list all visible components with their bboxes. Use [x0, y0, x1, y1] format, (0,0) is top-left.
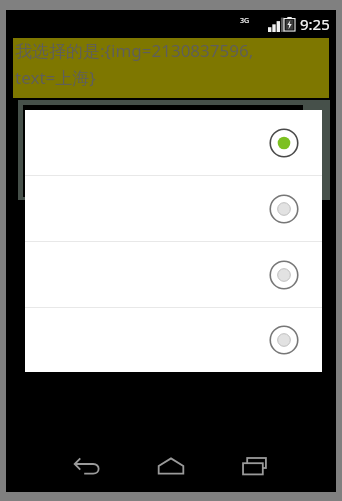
- staticText: 9:25: [300, 14, 330, 34]
- button[interactable]: [25, 110, 322, 175]
- button[interactable]: [25, 308, 322, 372]
- staticText: 我选择的是:{img=2130837596, text=上海}: [15, 39, 254, 89]
- button[interactable]: Recent apps: [213, 442, 297, 490]
- button[interactable]: Back: [45, 442, 129, 490]
- button[interactable]: [25, 242, 322, 307]
- staticText: 3G: [240, 16, 250, 26]
- button[interactable]: [25, 176, 322, 241]
- button[interactable]: Home: [129, 442, 213, 490]
